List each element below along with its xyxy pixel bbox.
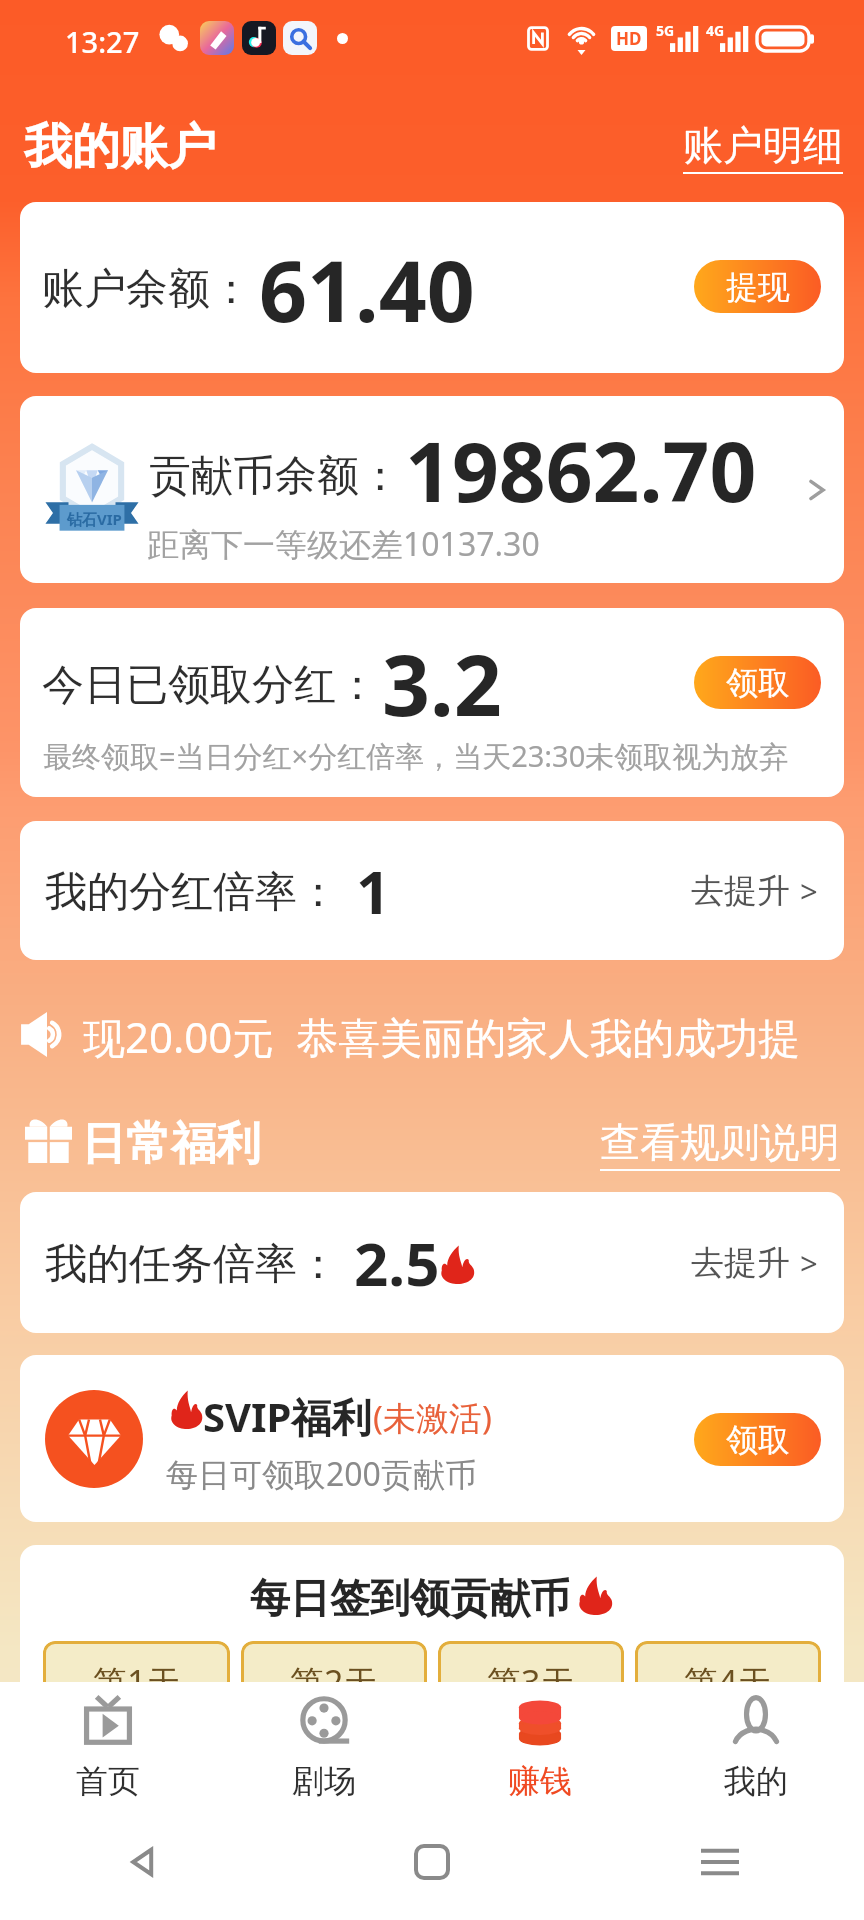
button[interactable]: 查看规则说明	[600, 1117, 840, 1171]
button[interactable]: 去提升	[691, 870, 818, 912]
staticText: 第1天	[93, 1659, 181, 1705]
staticText: 我的	[724, 1761, 788, 1801]
other: Announcement	[20, 1011, 74, 1058]
staticText: 最终领取=当日分红×分红倍率，当天23:30未领取视为放弃	[43, 736, 789, 776]
button[interactable]: 我的	[648, 1682, 864, 1804]
staticText: 去提升	[691, 1242, 790, 1284]
other: Recents	[701, 1848, 739, 1876]
button[interactable]: 第3天	[438, 1641, 624, 1775]
staticText: 5G	[656, 21, 675, 40]
staticText: 2.5	[354, 1222, 440, 1304]
staticText: SVIP福利	[203, 1389, 372, 1444]
button[interactable]: SVIP福利	[20, 1355, 844, 1522]
button[interactable]: 赚钱	[432, 1682, 648, 1804]
button[interactable]: 每日签到领贡献币	[20, 1545, 844, 1775]
staticText: 4G	[706, 21, 725, 40]
button[interactable]: 我的分红倍率：	[20, 821, 844, 960]
staticText: 账户余额：	[42, 263, 252, 316]
button[interactable]: 今日已领取分红：	[20, 608, 844, 797]
staticText: 每日可领取200贡献币	[166, 1452, 477, 1496]
button[interactable]: 第1天	[43, 1641, 230, 1775]
button[interactable]: 钻石VIP	[20, 396, 844, 583]
staticText: 第2天	[290, 1659, 378, 1705]
button[interactable]: 去提升	[691, 1242, 818, 1284]
button[interactable]: 账户明细	[683, 120, 843, 174]
staticText: 赚钱	[508, 1761, 572, 1801]
other: Back	[126, 1844, 162, 1880]
staticText: 领取	[726, 663, 790, 703]
staticText: 我的任务倍率：	[45, 1238, 339, 1291]
staticText: 距离下一等级还差10137.30	[147, 522, 540, 566]
button[interactable]: 账户余额：	[20, 202, 844, 373]
staticText: 现20.00元 恭喜美丽的家人我的成功提	[83, 1008, 801, 1065]
button[interactable]: 领取	[694, 656, 821, 709]
staticText: >	[800, 870, 818, 912]
staticText: 每日签到领贡献币	[250, 1573, 570, 1623]
staticText: 首页	[76, 1761, 140, 1801]
staticText: 剧场	[292, 1761, 356, 1801]
staticText: 今日已领取分红：	[42, 659, 378, 712]
staticText: 日常福利	[81, 1116, 261, 1173]
staticText: 提现	[726, 267, 790, 307]
staticText: (未激活)	[373, 1395, 492, 1440]
staticText: 账户明细	[683, 120, 843, 170]
staticText: 贡献币余额：	[149, 450, 401, 503]
staticText: 钻石VIP	[67, 509, 122, 529]
button[interactable]: 领取	[694, 1413, 821, 1466]
staticText: HD	[616, 27, 642, 50]
button[interactable]: 剧场	[216, 1682, 432, 1804]
staticText: 第3天	[487, 1659, 575, 1705]
other: Home	[416, 1846, 448, 1878]
staticText: 19862.70	[405, 414, 757, 526]
staticText: 3.2	[382, 626, 502, 740]
staticText: >	[800, 1242, 818, 1284]
staticText: 去提升	[691, 870, 790, 912]
button[interactable]: 第4天	[635, 1641, 821, 1775]
staticText: 我的账户	[24, 117, 216, 177]
staticText: 查看规则说明	[600, 1117, 840, 1167]
button[interactable]: 第2天	[241, 1641, 427, 1775]
staticText: 13:27	[65, 22, 140, 61]
staticText: 第4天	[684, 1659, 772, 1705]
button[interactable]: 我的任务倍率：	[20, 1192, 844, 1333]
staticText: 领取	[726, 1420, 790, 1460]
staticText: 61.40	[259, 232, 475, 346]
staticText: 1	[356, 850, 391, 932]
button[interactable]: 首页	[0, 1682, 216, 1804]
button[interactable]: 提现	[694, 260, 821, 313]
staticText: 我的分红倍率：	[45, 866, 339, 919]
